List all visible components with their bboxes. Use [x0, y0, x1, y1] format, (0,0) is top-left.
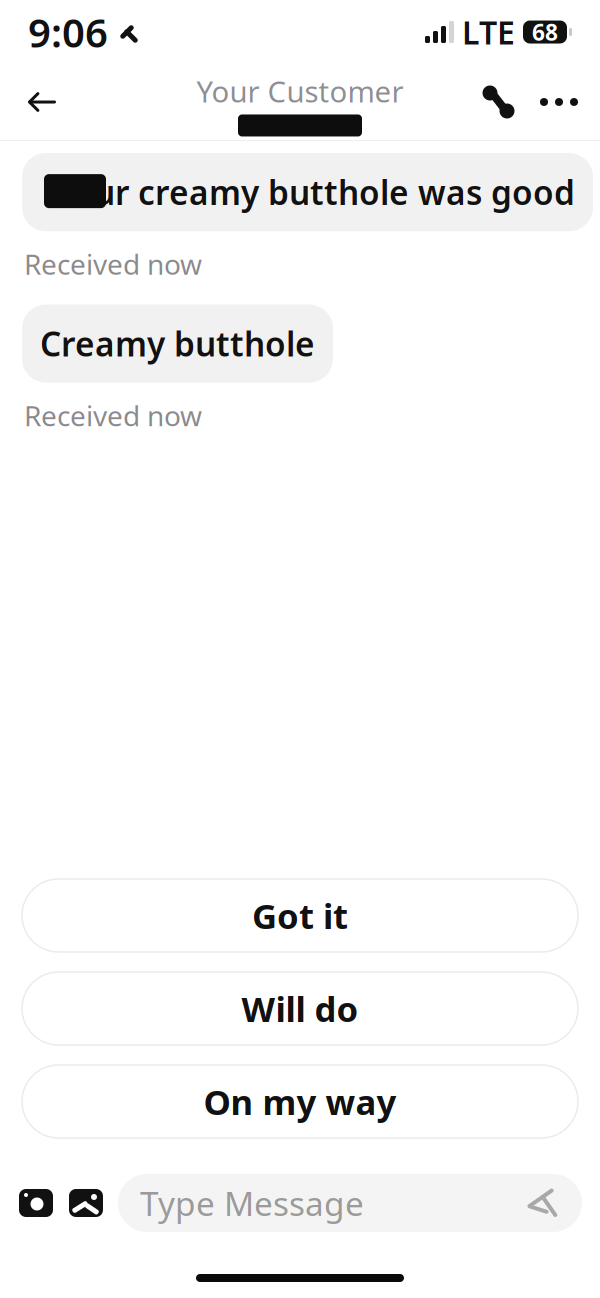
staticText: Creamy butthole: [40, 321, 315, 366]
button[interactable]: Photo library: [68, 1185, 104, 1221]
button[interactable]: Will do: [22, 972, 578, 1045]
staticText: Will do: [241, 985, 358, 1031]
button[interactable]: Camera: [18, 1185, 54, 1221]
staticText: Your Customer: [196, 71, 403, 110]
staticText: ur creamy butthole was good: [40, 170, 575, 214]
staticText: Got it: [252, 892, 348, 938]
staticText: 9:06: [28, 5, 108, 58]
staticText: Received now: [24, 245, 202, 282]
button[interactable]: Send: [522, 1186, 560, 1220]
staticText: 68: [532, 17, 558, 47]
button[interactable]: Call: [468, 72, 528, 132]
staticText: Type Message: [140, 1181, 364, 1225]
button[interactable]: On my way: [22, 1065, 578, 1138]
button[interactable]: Got it: [22, 879, 578, 952]
staticText: Received now: [24, 397, 202, 434]
staticText: LTE: [462, 11, 515, 53]
button[interactable]: More options: [528, 72, 590, 132]
button[interactable]: Back: [10, 70, 74, 134]
staticText: On my way: [203, 1078, 396, 1124]
